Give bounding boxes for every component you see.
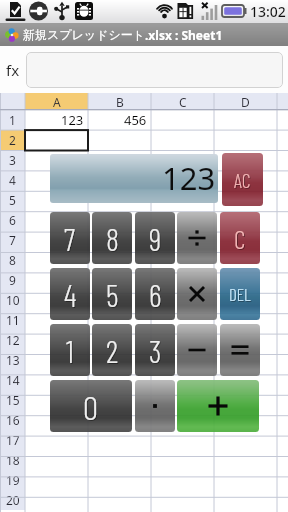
button[interactable] [151,190,214,210]
button[interactable]: Plus [177,380,259,432]
button[interactable] [151,170,214,190]
button[interactable] [214,410,277,430]
button[interactable] [214,190,277,210]
button[interactable] [88,230,151,250]
button[interactable] [151,370,214,390]
button[interactable] [25,350,88,370]
button[interactable] [151,390,214,410]
button[interactable]: 456 [88,110,151,130]
button[interactable] [151,270,214,290]
button[interactable] [88,450,151,470]
button[interactable] [88,150,151,170]
button[interactable] [25,450,88,470]
button[interactable] [88,470,151,490]
button[interactable]: 1 [0,110,25,130]
button[interactable] [151,110,214,130]
button[interactable] [25,230,88,250]
button[interactable] [88,390,151,410]
button[interactable] [26,52,283,88]
button[interactable] [88,350,151,370]
button[interactable] [25,250,88,270]
button[interactable] [214,210,277,230]
button[interactable]: 20 [0,490,25,510]
button[interactable] [88,170,151,190]
button[interactable] [214,310,277,330]
button[interactable] [25,210,88,230]
button[interactable] [214,370,277,390]
button[interactable] [214,330,277,350]
button[interactable] [214,490,277,510]
button[interactable] [151,210,214,230]
button[interactable] [151,490,214,510]
button[interactable] [88,290,151,310]
button[interactable]: 12 [0,330,25,350]
button[interactable] [214,290,277,310]
button[interactable]: C [151,93,214,110]
button[interactable] [151,130,214,150]
button[interactable] [214,470,277,490]
button[interactable] [214,150,277,170]
button[interactable] [214,230,277,250]
button[interactable]: Equals [220,324,260,376]
button[interactable] [25,490,88,510]
button[interactable] [214,250,277,270]
button[interactable]: 13 [0,350,25,370]
button[interactable] [88,270,151,290]
button[interactable]: 19 [0,470,25,490]
button[interactable] [25,410,88,430]
button[interactable]: 16 [0,410,25,430]
button[interactable] [25,290,88,310]
button[interactable]: 5 [0,190,25,210]
button[interactable]: 6 [135,268,175,320]
button[interactable] [151,350,214,370]
button[interactable] [88,250,151,270]
button[interactable]: 123 [25,110,88,130]
button[interactable] [214,450,277,470]
button[interactable] [88,430,151,450]
button[interactable] [151,410,214,430]
button[interactable] [151,430,214,450]
button[interactable] [25,270,88,290]
button[interactable] [25,430,88,450]
button[interactable]: 15 [0,390,25,410]
button[interactable] [88,410,151,430]
button[interactable]: B [88,93,151,110]
button[interactable]: 4 [50,268,90,320]
button[interactable]: Multiply [177,268,217,320]
button[interactable]: Decimal point [135,380,175,432]
button[interactable]: 18 [0,450,25,470]
button[interactable] [214,110,277,130]
button[interactable] [88,130,151,150]
button[interactable] [25,310,88,330]
button[interactable] [25,390,88,410]
button[interactable]: 9 [0,270,25,290]
button[interactable]: 17 [0,430,25,450]
button[interactable]: 3 [0,150,25,170]
button[interactable] [88,370,151,390]
button[interactable]: 7 [0,230,25,250]
button[interactable]: 新規スプレッドシート [0,23,288,46]
button[interactable] [214,390,277,410]
button[interactable] [214,430,277,450]
button[interactable] [25,370,88,390]
button[interactable] [151,470,214,490]
button[interactable]: D [214,93,277,110]
button[interactable]: 1 [50,324,90,376]
button[interactable] [88,210,151,230]
button[interactable] [25,130,88,150]
button[interactable] [151,310,214,330]
button[interactable]: 2 [0,130,25,150]
button[interactable]: AC [222,153,263,206]
button[interactable]: Minus [177,324,217,376]
button[interactable] [214,130,277,150]
button[interactable]: 14 [0,370,25,390]
button[interactable] [88,330,151,350]
button[interactable]: 4 [0,170,25,190]
button[interactable] [151,330,214,350]
button[interactable] [25,150,88,170]
button[interactable] [25,330,88,350]
button[interactable]: C [220,212,260,264]
button[interactable]: 6 [0,210,25,230]
button[interactable] [214,350,277,370]
button[interactable] [25,170,88,190]
